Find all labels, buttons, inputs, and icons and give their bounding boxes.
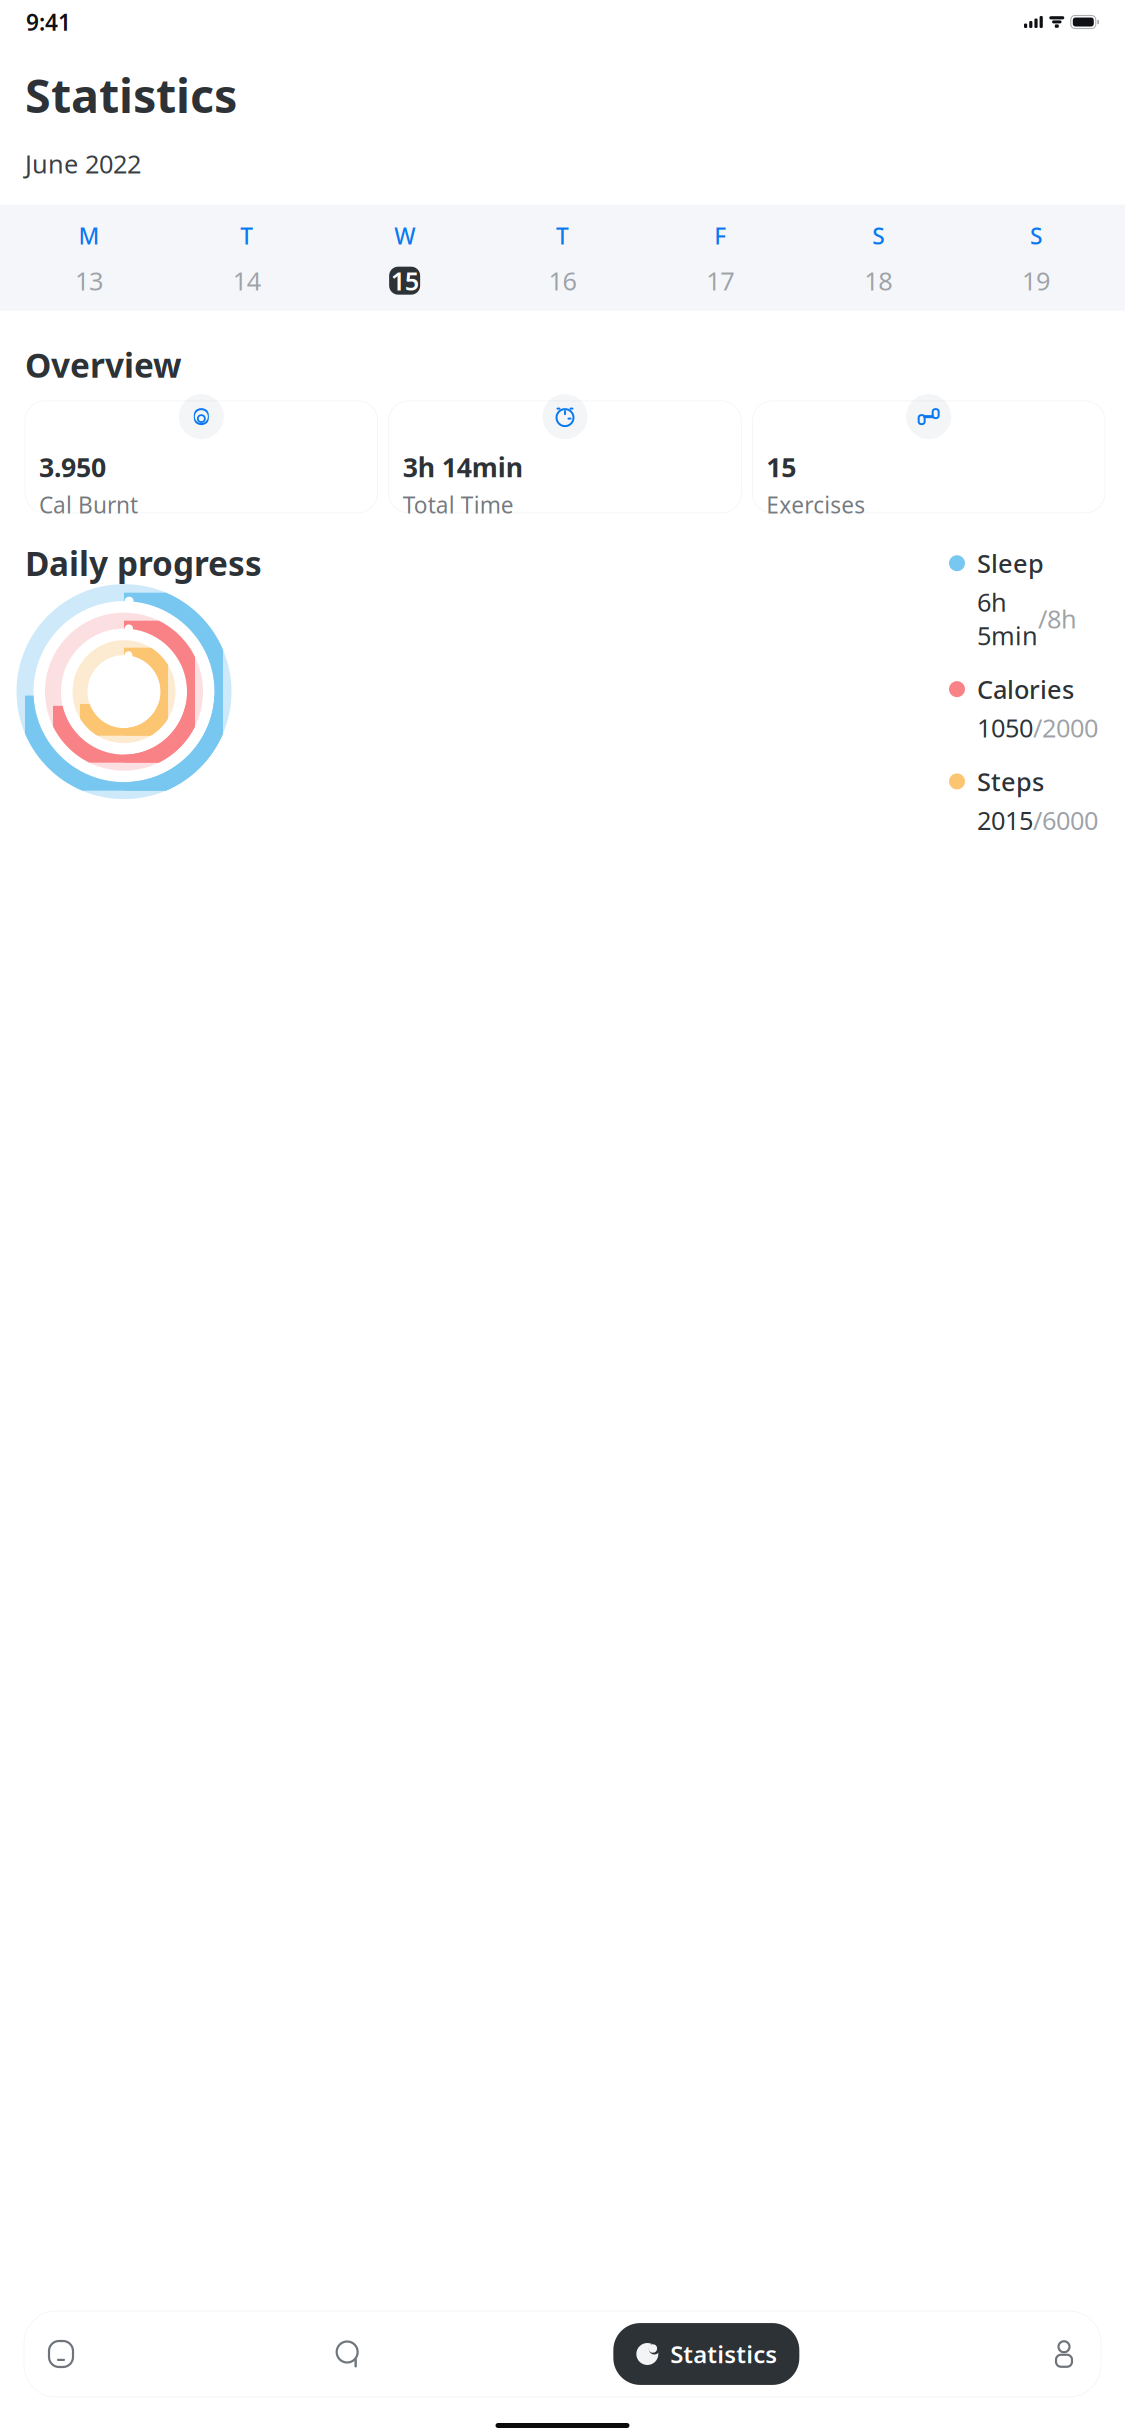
staticText: 1050 — [977, 711, 1033, 745]
button[interactable]: S — [799, 201, 957, 315]
staticText: Cal Burnt — [39, 489, 138, 520]
staticText: W — [394, 221, 415, 251]
staticText: 13 — [75, 264, 103, 297]
staticText: 2015 — [977, 803, 1033, 837]
staticText: /8h — [1038, 602, 1077, 635]
staticText: 19 — [1022, 264, 1050, 297]
staticText: June 2022 — [25, 147, 141, 181]
staticText: Exercises — [766, 489, 865, 520]
staticText: 14 — [233, 264, 261, 297]
button[interactable]: T — [168, 201, 326, 315]
staticText: Steps — [977, 765, 1044, 798]
button[interactable]: S — [957, 201, 1115, 315]
staticText: Daily progress — [25, 541, 262, 585]
button[interactable]: F — [641, 201, 799, 315]
staticText: 15 — [391, 264, 419, 297]
button[interactable]: 3.950 — [25, 401, 378, 513]
staticText: Calories — [977, 672, 1074, 706]
staticText: Total Time — [403, 489, 514, 520]
staticText: T — [240, 221, 253, 251]
staticText: T — [556, 221, 569, 251]
staticText: S — [1030, 221, 1042, 251]
staticText: Overview — [25, 343, 182, 387]
button[interactable]: Statistics — [613, 2323, 799, 2385]
button[interactable]: M — [10, 201, 168, 315]
staticText: Sleep — [977, 546, 1044, 580]
staticText: F — [714, 221, 726, 251]
staticText: Statistics — [25, 64, 237, 126]
button[interactable]: 15 — [752, 401, 1105, 513]
staticText: 3h 14min — [403, 449, 523, 484]
staticText: 3.950 — [39, 449, 106, 484]
button[interactable]: W — [326, 201, 484, 315]
button[interactable]: T — [484, 201, 641, 315]
staticText: 9:41 — [26, 7, 71, 37]
staticText: 17 — [706, 264, 734, 297]
button[interactable]: 3h 14min — [389, 401, 741, 513]
staticText: S — [872, 221, 884, 251]
staticText: Statistics — [670, 2338, 777, 2370]
button[interactable]: Profile — [1041, 2327, 1087, 2381]
button[interactable]: Search — [326, 2327, 372, 2381]
staticText: M — [78, 221, 99, 251]
button[interactable]: Home — [38, 2327, 84, 2381]
staticText: /6000 — [1033, 803, 1098, 837]
staticText: 16 — [548, 264, 576, 297]
staticText: /2000 — [1033, 711, 1098, 745]
staticText: 15 — [766, 449, 796, 484]
staticText: 6h 5min — [977, 585, 1038, 652]
staticText: 18 — [864, 264, 892, 297]
